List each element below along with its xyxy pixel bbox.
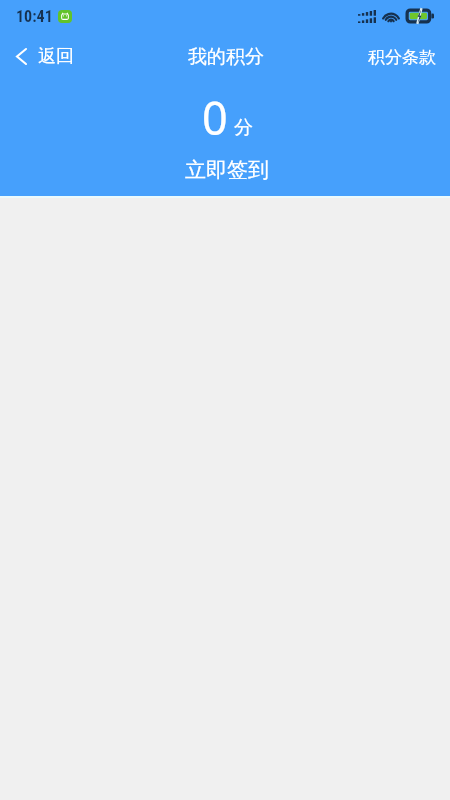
button[interactable]: 积分条款 — [352, 41, 450, 74]
staticText: 分 — [234, 116, 253, 140]
staticText: 积分条款 — [368, 47, 436, 68]
staticText: 10:41 — [16, 7, 53, 26]
staticText: 返回 — [38, 45, 74, 68]
button[interactable]: 立即签到 — [161, 154, 293, 186]
staticText: 立即签到 — [185, 157, 269, 183]
staticText: 0 — [202, 87, 228, 148]
other: Back — [16, 48, 27, 65]
staticText: 我的积分 — [188, 45, 264, 69]
button[interactable]: Back — [0, 39, 88, 74]
